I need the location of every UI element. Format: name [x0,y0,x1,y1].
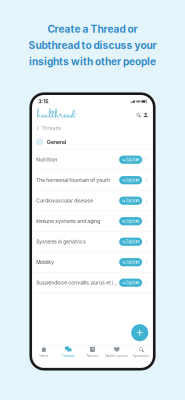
staticText: Threads [41,125,61,131]
button[interactable]: Suspendisse convallis, purus et in... [31,273,154,293]
staticText: healthread [37,106,75,124]
staticText: Immune systems and aging [36,218,100,224]
staticText: Articles [86,354,98,358]
button[interactable]: Nutrition [31,150,154,170]
button[interactable]: Mobility [31,252,154,273]
button[interactable]: Home [32,345,56,359]
button[interactable]: New thread [131,324,148,341]
button[interactable]: Search [135,111,142,119]
button[interactable]: Articles [80,345,105,359]
staticText: Explore [126,219,139,224]
staticText: Explore [126,239,139,244]
staticText: Mobility [36,259,54,265]
staticText: Threads [62,354,75,358]
button[interactable]: Systems in geriatrics [31,232,154,252]
staticText: Create a Thread or [47,23,137,35]
staticText: Cardiovascular disease [36,198,93,204]
button[interactable]: Cardiovascular disease [31,191,154,211]
staticText: ™ [75,113,77,117]
staticText: Explore [126,178,139,183]
staticText: Symptoms [133,354,150,358]
staticText: Subthread to discuss your [28,39,156,52]
staticText: Systems in geriatrics [36,239,86,245]
staticText: General [47,139,66,145]
staticText: insights with other people [29,55,156,68]
button[interactable]: General [31,135,154,150]
button[interactable]: Health causes [105,345,129,359]
button[interactable]: Threads [56,345,80,359]
staticText: Explore [126,260,139,265]
button[interactable]: Account [142,111,149,119]
staticText: Home [39,354,48,358]
staticText: The hormonal fountain of youth [36,177,110,183]
staticText: Explore [126,157,139,162]
staticText: Explore [126,280,139,285]
button[interactable]: The hormonal fountain of youth [31,170,154,191]
staticText: Suspendisse convallis, purus et in... [36,280,117,286]
staticText: Explore [126,198,139,203]
button[interactable]: Threads [31,122,154,135]
staticText: Health causes [105,354,128,358]
staticText: Nutrition [36,157,57,163]
button[interactable]: Symptoms [129,345,153,359]
staticText: 3:15 [38,98,48,105]
button[interactable]: Immune systems and aging [31,211,154,232]
